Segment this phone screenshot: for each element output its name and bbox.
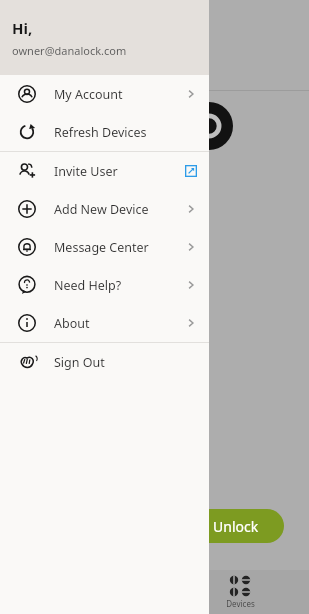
button[interactable]: Sign Out <box>0 343 209 381</box>
button[interactable]: My Account <box>0 75 209 113</box>
staticText: Sign Out <box>54 354 173 371</box>
staticText: Invite User <box>54 163 173 180</box>
staticText: Need Help? <box>54 277 173 294</box>
staticText: Add New Device <box>54 201 173 218</box>
button[interactable]: Unlock <box>188 509 284 543</box>
button[interactable]: Message Center <box>0 228 209 266</box>
button[interactable]: About <box>0 304 209 342</box>
staticText: Refresh Devices <box>54 124 173 141</box>
staticText: Hi, <box>12 18 33 38</box>
staticText: Devices <box>226 598 255 609</box>
staticText: About <box>54 315 173 332</box>
button[interactable]: Invite User <box>0 152 209 190</box>
staticText: Message Center <box>54 239 173 256</box>
staticText: owner@danalock.com <box>12 43 127 58</box>
button[interactable]: Add New Device <box>0 190 209 228</box>
button[interactable]: Need Help? <box>0 266 209 304</box>
button[interactable]: Refresh Devices <box>0 113 209 151</box>
staticText: My Account <box>54 86 173 103</box>
staticText: Unlock <box>213 517 259 536</box>
button[interactable]: Devices <box>215 576 265 609</box>
